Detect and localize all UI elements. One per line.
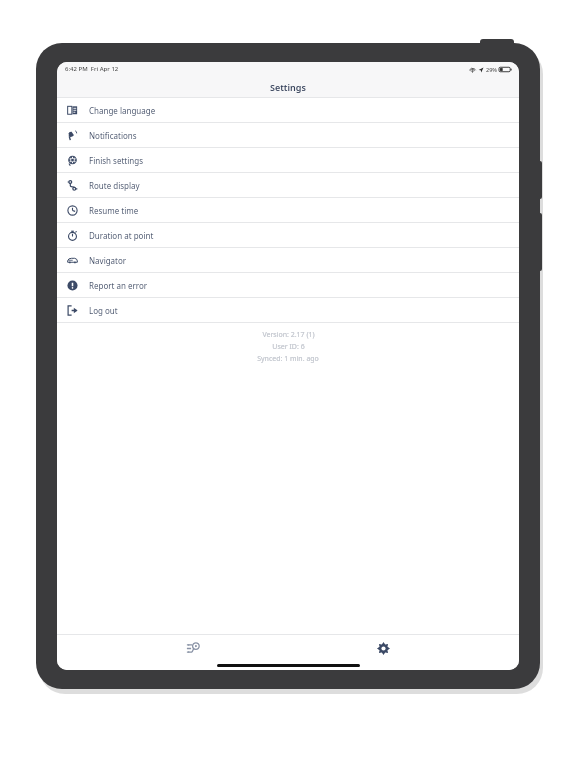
button[interactable]: Report an error [57, 273, 519, 297]
button[interactable]: Resume time [57, 198, 519, 222]
staticText: Settings [270, 81, 306, 93]
staticText: 29% [486, 66, 497, 73]
staticText: Duration at point [89, 230, 154, 241]
staticText: Notifications [89, 130, 137, 141]
button[interactable]: Notifications [57, 123, 519, 147]
staticText: Navigator [89, 255, 127, 266]
button[interactable]: Finish settings [57, 148, 519, 172]
staticText: 6:42 PM Fri Apr 12 [65, 65, 119, 73]
staticText: Finish settings [89, 155, 143, 166]
staticText: Report an error [89, 280, 148, 291]
button[interactable]: Route display [57, 173, 519, 197]
button[interactable]: Navigator [57, 248, 519, 272]
staticText: Resume time [89, 205, 139, 216]
staticText: Change language [89, 105, 156, 116]
staticText: Log out [89, 305, 118, 316]
staticText: Route display [89, 180, 140, 191]
button[interactable]: Routes [138, 635, 248, 661]
button[interactable]: Change language [57, 98, 519, 122]
staticText: User ID: 6 [272, 342, 305, 352]
button[interactable]: Log out [57, 298, 519, 322]
button[interactable]: Settings [328, 635, 438, 661]
staticText: Synced: 1 min. ago [257, 354, 319, 364]
button[interactable]: Duration at point [57, 223, 519, 247]
staticText: Version: 2.17 (1) [262, 330, 315, 340]
